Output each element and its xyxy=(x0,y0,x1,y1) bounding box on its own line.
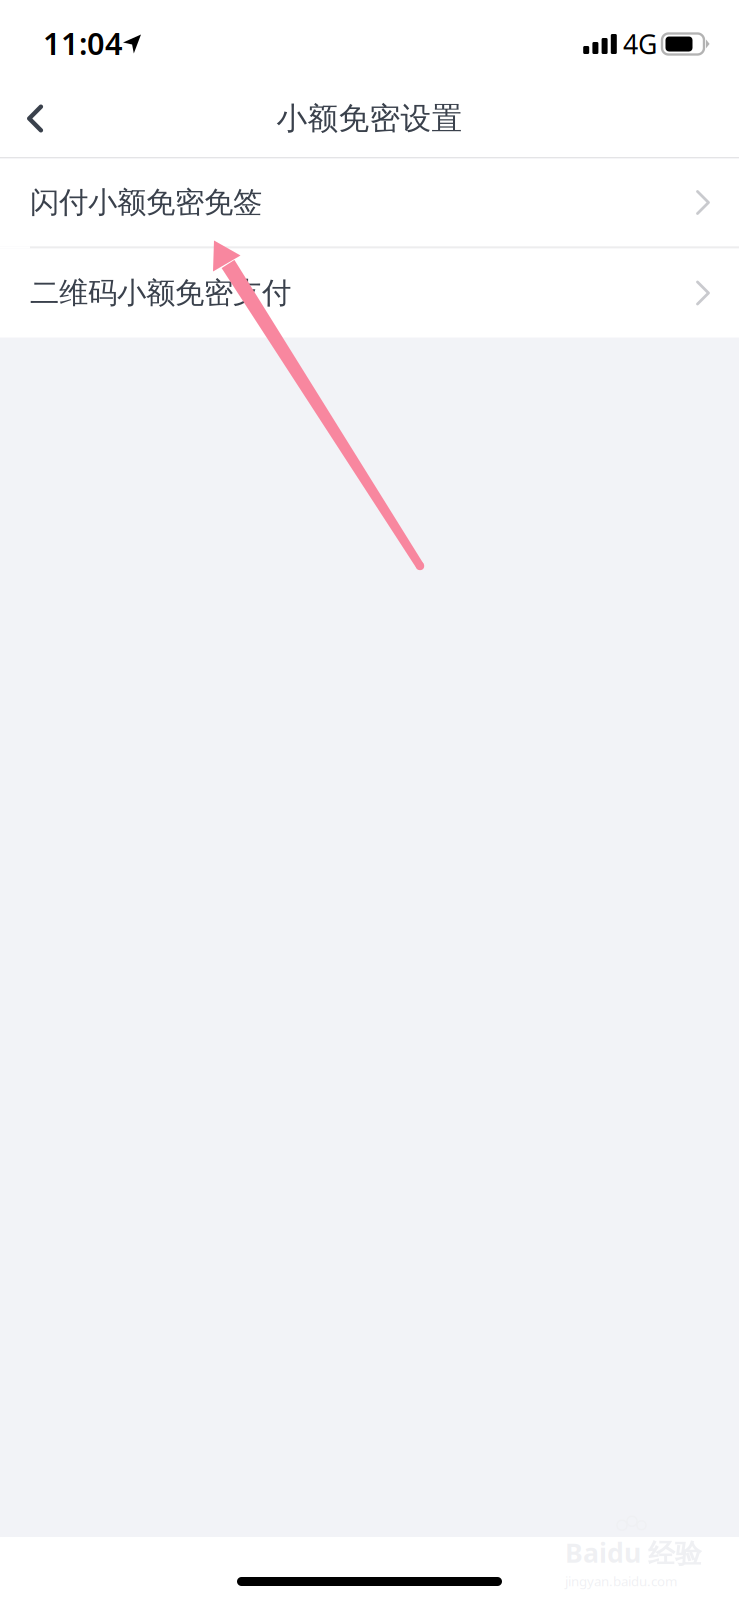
staticText: 11:04 xyxy=(43,23,123,63)
staticText: 4G xyxy=(623,26,657,62)
staticText: Baidu 经验 xyxy=(565,1535,702,1570)
button[interactable]: 闪付小额免密免签 xyxy=(0,158,739,246)
button[interactable]: Back xyxy=(0,85,70,157)
staticText: 小额免密设置 xyxy=(276,100,462,137)
staticText: 二维码小额免密支付 xyxy=(30,275,291,311)
button[interactable]: 二维码小额免密支付 xyxy=(0,248,739,337)
staticText: 闪付小额免密免签 xyxy=(30,184,262,220)
staticText: jingyan.baidu.com xyxy=(565,1572,677,1590)
